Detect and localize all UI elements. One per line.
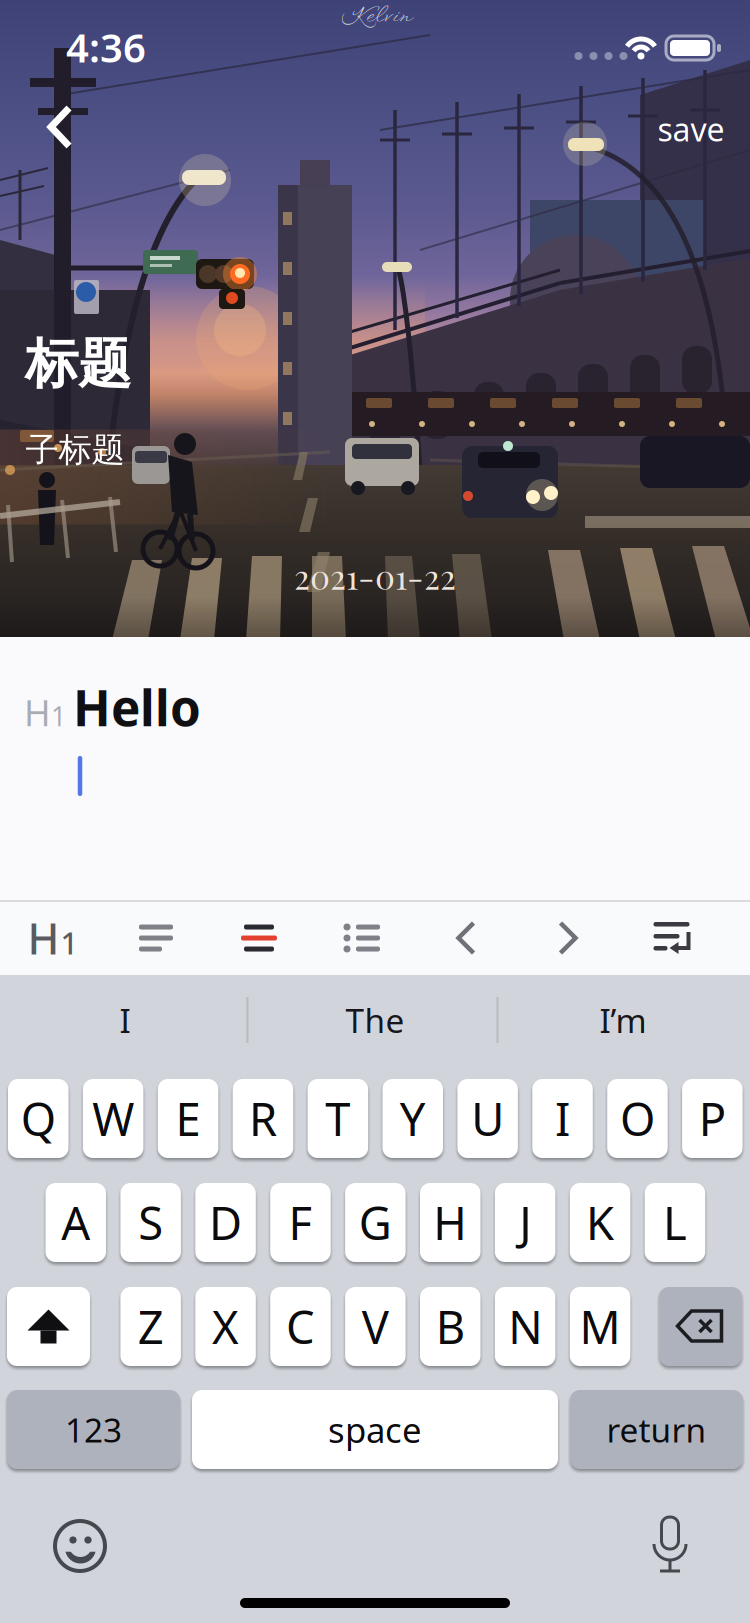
button[interactable]: Redo — [557, 921, 578, 955]
staticText: N — [508, 1296, 542, 1357]
staticText: space — [328, 1406, 422, 1452]
button[interactable]: Dictation — [650, 1514, 690, 1578]
button[interactable]: N — [495, 1287, 555, 1366]
staticText: 2021-01-22 — [294, 554, 456, 598]
staticText: T — [325, 1088, 350, 1149]
button[interactable]: Align text — [139, 924, 173, 951]
staticText: V — [362, 1296, 389, 1357]
staticText: Z — [138, 1296, 164, 1357]
button[interactable]: W — [83, 1079, 143, 1158]
button[interactable]: X — [195, 1287, 256, 1366]
button[interactable]: return — [570, 1390, 743, 1469]
button[interactable]: 123 — [7, 1390, 180, 1469]
button[interactable]: save — [657, 108, 724, 150]
staticText: P — [699, 1088, 726, 1149]
button[interactable]: Back — [45, 102, 75, 152]
staticText: Y — [400, 1088, 426, 1149]
staticText: U — [471, 1088, 504, 1149]
button[interactable]: V — [345, 1287, 406, 1366]
staticText: W — [92, 1088, 134, 1149]
staticText: C — [286, 1296, 315, 1357]
button[interactable]: Z — [120, 1287, 181, 1366]
button[interactable]: G — [345, 1183, 406, 1262]
staticText: X — [212, 1296, 239, 1357]
staticText: R — [249, 1088, 277, 1149]
button[interactable]: R — [233, 1079, 293, 1158]
staticText: Q — [21, 1088, 56, 1149]
staticText: Hello — [73, 674, 201, 740]
button[interactable]: E — [158, 1079, 218, 1158]
button[interactable]: Emoji — [50, 1516, 110, 1576]
button[interactable]: P — [682, 1079, 743, 1158]
staticText: S — [138, 1192, 163, 1253]
staticText: K — [586, 1192, 614, 1253]
staticText: L — [663, 1192, 687, 1253]
button[interactable]: Undo — [455, 921, 476, 955]
button[interactable]: A — [45, 1183, 106, 1262]
staticText: I — [555, 1088, 570, 1149]
staticText: 123 — [65, 1407, 122, 1452]
button[interactable]: Bulleted list — [344, 924, 380, 951]
staticText: G — [359, 1192, 392, 1253]
staticText: H — [433, 1192, 467, 1253]
staticText: F — [288, 1192, 312, 1253]
staticText: I’m — [599, 998, 646, 1042]
button[interactable]: Delete — [659, 1287, 742, 1366]
staticText: save — [657, 108, 724, 150]
button[interactable]: Shift — [7, 1287, 90, 1366]
button[interactable]: I — [532, 1079, 593, 1158]
staticText: I — [119, 998, 130, 1042]
staticText: H — [24, 688, 51, 736]
staticText: 1 — [51, 698, 66, 733]
button[interactable]: L — [645, 1183, 705, 1262]
button[interactable]: I — [5, 976, 245, 1064]
staticText: 4:36 — [66, 20, 146, 73]
button[interactable]: C — [270, 1287, 331, 1366]
staticText: 子标题 — [25, 429, 124, 470]
staticText: 标题 — [25, 331, 131, 397]
button[interactable]: D — [195, 1183, 256, 1262]
button[interactable]: F — [270, 1183, 331, 1262]
button[interactable]: space — [192, 1390, 558, 1469]
staticText: M — [580, 1296, 621, 1357]
staticText: O — [620, 1088, 655, 1149]
button[interactable]: I’m — [503, 976, 743, 1064]
button[interactable]: Y — [382, 1079, 443, 1158]
button[interactable]: J — [495, 1183, 555, 1262]
staticText: E — [176, 1088, 201, 1149]
button[interactable]: S — [120, 1183, 181, 1262]
button[interactable]: U — [457, 1079, 518, 1158]
button[interactable]: H — [420, 1183, 480, 1262]
staticText: H — [27, 910, 59, 966]
button[interactable]: O — [607, 1079, 668, 1158]
button[interactable]: Horizontal rule — [241, 924, 277, 951]
staticText: B — [436, 1296, 465, 1357]
staticText: return — [606, 1407, 706, 1452]
staticText: A — [61, 1192, 90, 1253]
button[interactable]: Heading 1 — [18, 903, 88, 973]
staticText: J — [519, 1192, 531, 1253]
button[interactable]: Insert line break — [653, 922, 690, 954]
button[interactable]: Q — [8, 1079, 68, 1158]
staticText: 1 — [60, 922, 78, 963]
button[interactable]: B — [420, 1287, 480, 1366]
staticText: The — [345, 998, 404, 1042]
staticText: Kelvin — [341, 2, 408, 32]
staticText: D — [209, 1192, 242, 1253]
button[interactable]: M — [570, 1287, 630, 1366]
button[interactable]: T — [308, 1079, 368, 1158]
button[interactable]: K — [570, 1183, 630, 1262]
button[interactable]: The — [255, 976, 495, 1064]
